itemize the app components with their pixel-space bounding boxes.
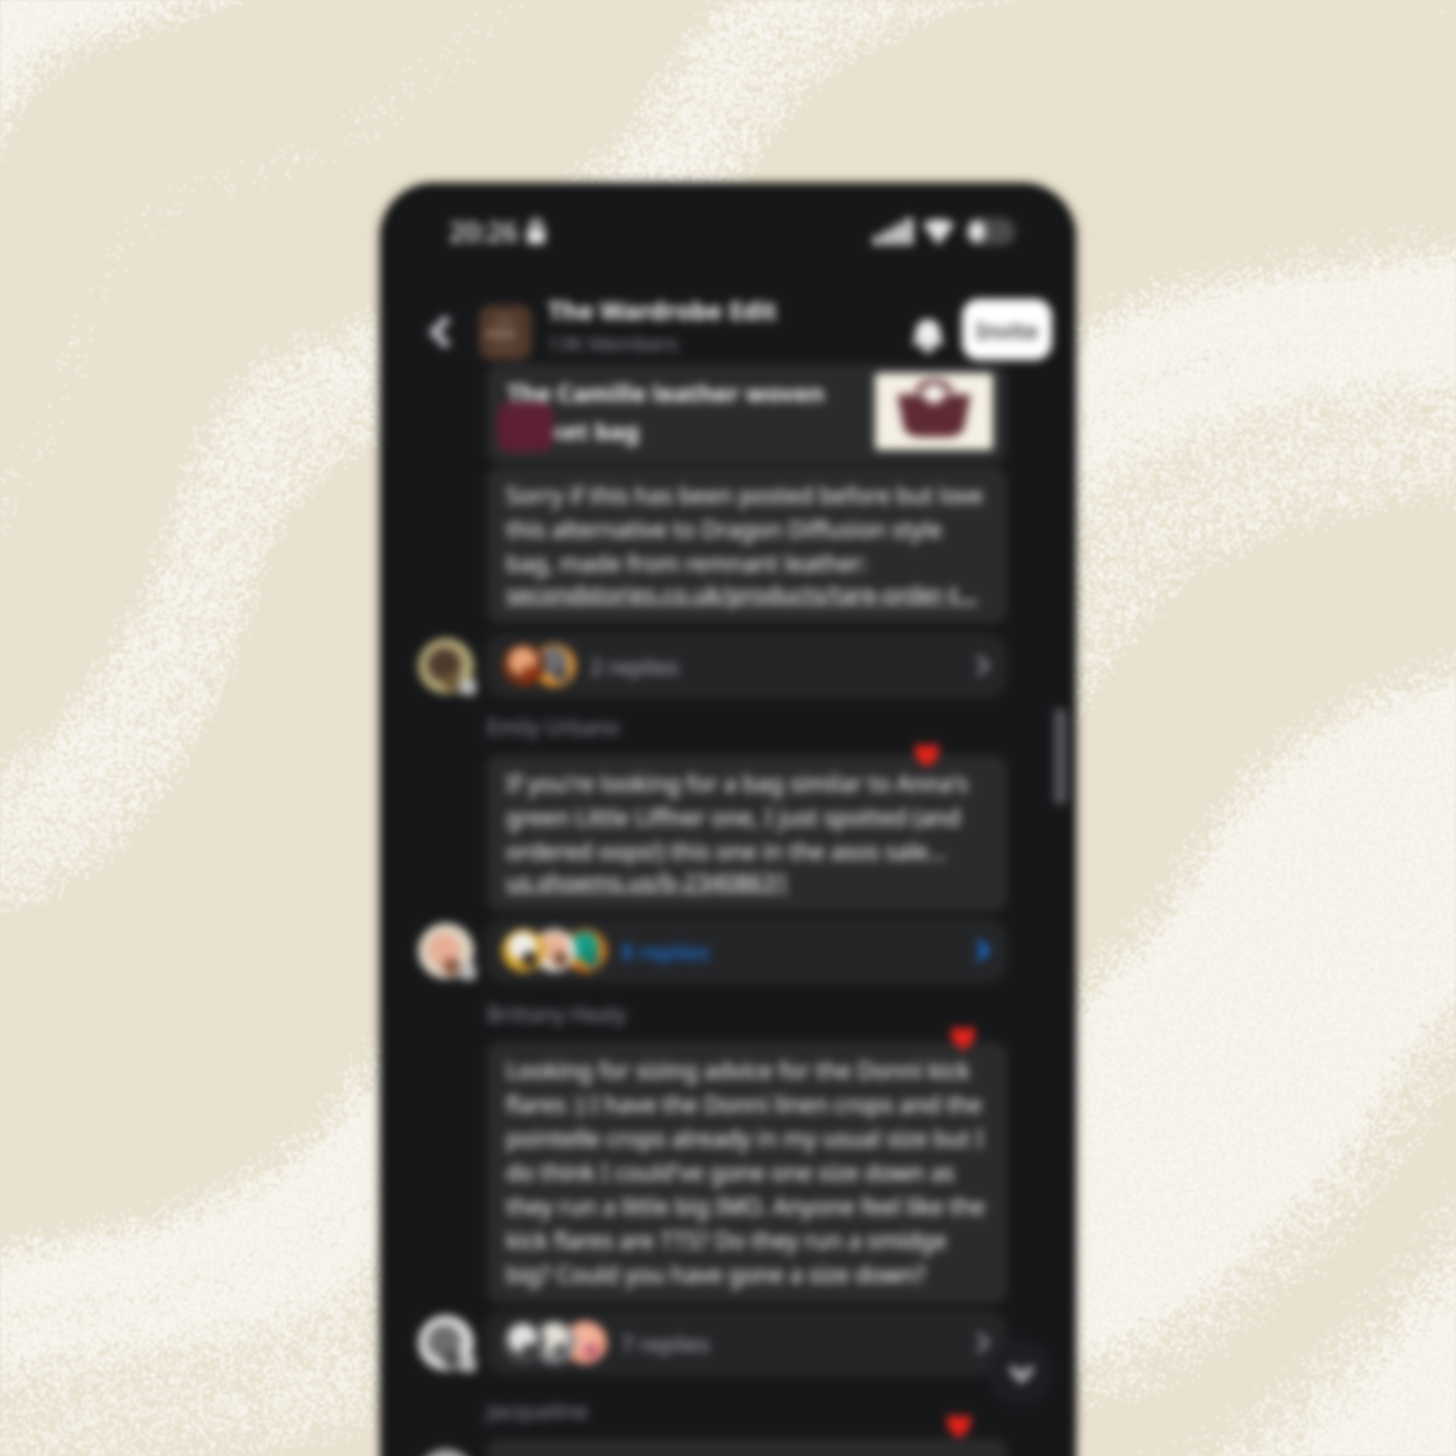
staticText: Jacqueline — [487, 1397, 588, 1426]
staticText: secondstories.co.uk/products/tare-order-… — [506, 578, 978, 609]
button[interactable]: 7 replies — [485, 1310, 1007, 1375]
staticText: 2 replies — [590, 651, 679, 681]
button[interactable]: Scroll to bottom — [989, 1341, 1053, 1405]
button[interactable]: The Camille leather woven basket bag — [487, 364, 1007, 463]
button[interactable] — [487, 1439, 1007, 1456]
button[interactable]: Notifications — [904, 312, 952, 360]
button[interactable]: 8 replies — [485, 918, 1007, 983]
staticText: If you're looking for a bag similar to A… — [506, 767, 968, 866]
button[interactable]: Back — [413, 304, 469, 360]
button[interactable]: Sorry if this has been posted before but… — [487, 467, 1007, 623]
button[interactable]: If you're looking for a bag similar to A… — [487, 755, 1007, 911]
staticText: 7 replies — [621, 1328, 710, 1358]
staticText: 8 replies — [621, 936, 710, 966]
staticText: Sorry if this has been posted before but… — [506, 479, 984, 578]
button[interactable]: Invite — [962, 299, 1052, 360]
staticText: Looking for sizing advice for the Donni … — [506, 1054, 986, 1289]
staticText: us.shoems.us/b-23408631 — [506, 866, 789, 897]
staticText: Invite — [976, 315, 1039, 345]
staticText: The Wardrobe Edit — [548, 293, 777, 327]
button[interactable]: 2 replies — [485, 633, 1007, 698]
staticText: Emily Urbano — [487, 713, 620, 742]
staticText: Brittany Healy — [487, 1000, 627, 1029]
button[interactable]: Looking for sizing advice for the Donni … — [487, 1042, 1007, 1303]
staticText: 20:26 — [449, 213, 519, 250]
staticText: The Camille leather woven basket bag — [507, 376, 865, 447]
staticText: 13K Members — [548, 330, 678, 357]
